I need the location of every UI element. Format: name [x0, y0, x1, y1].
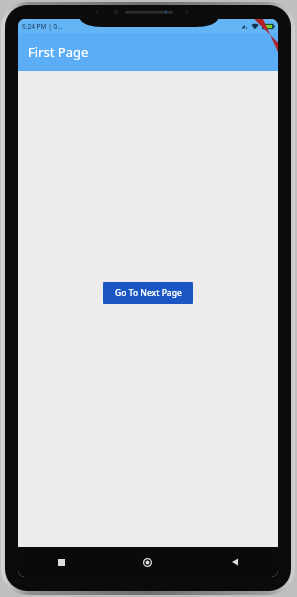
- button[interactable]: Home: [104, 547, 191, 577]
- button[interactable]: Recent apps: [18, 547, 104, 577]
- staticText: 5:24 PM | 0…: [22, 22, 63, 31]
- staticText: First Page: [28, 43, 89, 61]
- staticText: Go To Next Page: [115, 287, 182, 299]
- button[interactable]: Go To Next Page: [103, 282, 193, 304]
- button[interactable]: Back: [191, 547, 278, 577]
